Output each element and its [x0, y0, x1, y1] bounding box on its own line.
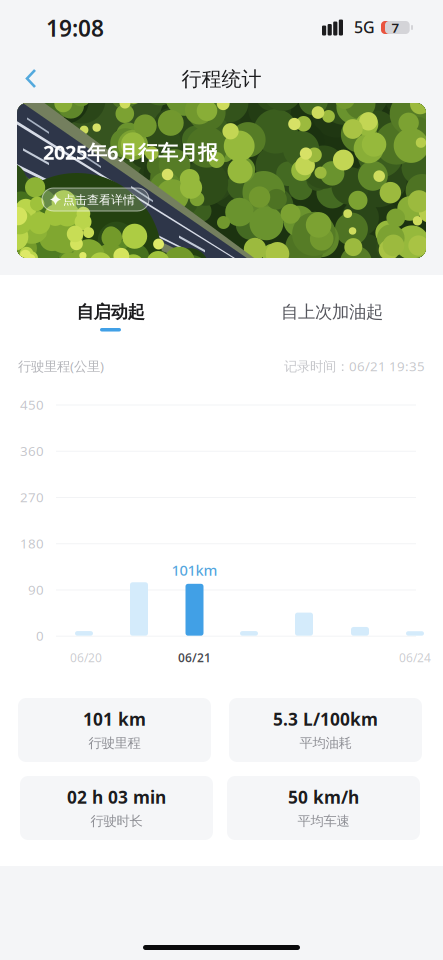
staticText: 270 — [20, 488, 44, 506]
staticText: 点击查看详情 — [63, 193, 135, 207]
staticText: 行程统计 — [181, 67, 261, 91]
staticText: 行驶时长 — [90, 813, 142, 829]
staticText: 5.3 L/100km — [273, 707, 378, 730]
staticText: 101 km — [83, 707, 146, 730]
staticText: 自启动起 — [76, 301, 144, 323]
staticText: 行驶里程 — [88, 735, 140, 751]
staticText: 06/24 — [399, 650, 431, 666]
staticText: 行驶里程(公里) — [18, 357, 104, 375]
staticText: 记录时间：06/21 19:35 — [284, 357, 425, 375]
button[interactable]: Back — [12, 55, 58, 103]
staticText: 90 — [28, 581, 44, 598]
button[interactable]: 2025年6月行车月报 — [17, 103, 426, 258]
staticText: 19:08 — [46, 13, 104, 43]
staticText: 50 km/h — [288, 785, 359, 808]
staticText: 360 — [20, 442, 44, 460]
staticText: 101km — [171, 560, 217, 580]
staticText: 0 — [36, 627, 44, 644]
button[interactable]: 自启动起 — [0, 275, 221, 337]
staticText: 平均车速 — [297, 813, 349, 829]
staticText: 5G — [354, 16, 375, 38]
staticText: 7 — [391, 19, 399, 36]
staticText: 平均油耗 — [299, 735, 351, 751]
staticText: 06/21 — [178, 650, 211, 666]
staticText: 2025年6月行车月报 — [43, 139, 218, 165]
staticText: 450 — [20, 396, 44, 413]
staticText: 自上次加油起 — [281, 301, 383, 323]
staticText: 180 — [20, 534, 44, 552]
staticText: 02 h 03 min — [67, 785, 166, 808]
staticText: 06/20 — [70, 650, 102, 666]
button[interactable]: 自上次加油起 — [221, 275, 443, 337]
